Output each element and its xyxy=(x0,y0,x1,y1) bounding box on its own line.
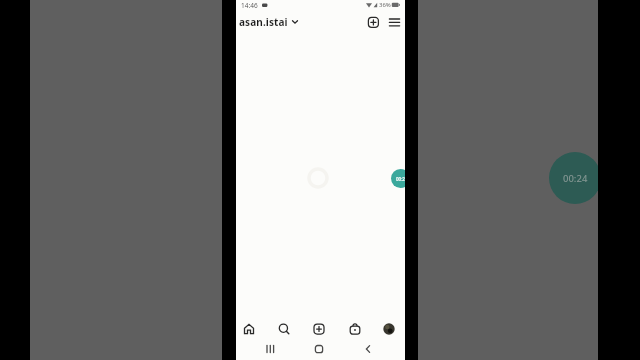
staticText: 14:46 xyxy=(241,1,258,10)
button[interactable] xyxy=(383,323,395,335)
button[interactable]: asan.istai xyxy=(239,13,301,30)
button[interactable]: 00:2 xyxy=(391,169,405,188)
button[interactable] xyxy=(309,341,329,357)
button[interactable] xyxy=(260,341,281,357)
staticText: asan.istai xyxy=(239,15,288,29)
staticText: 00:24 xyxy=(563,172,588,185)
button[interactable] xyxy=(358,341,378,357)
staticText: 00:2 xyxy=(396,176,405,182)
button[interactable] xyxy=(349,323,361,335)
button[interactable] xyxy=(243,323,255,335)
button[interactable] xyxy=(367,16,380,29)
button[interactable] xyxy=(313,323,325,335)
staticText: 36% xyxy=(379,1,391,9)
button[interactable] xyxy=(278,323,290,335)
button[interactable] xyxy=(388,16,401,29)
